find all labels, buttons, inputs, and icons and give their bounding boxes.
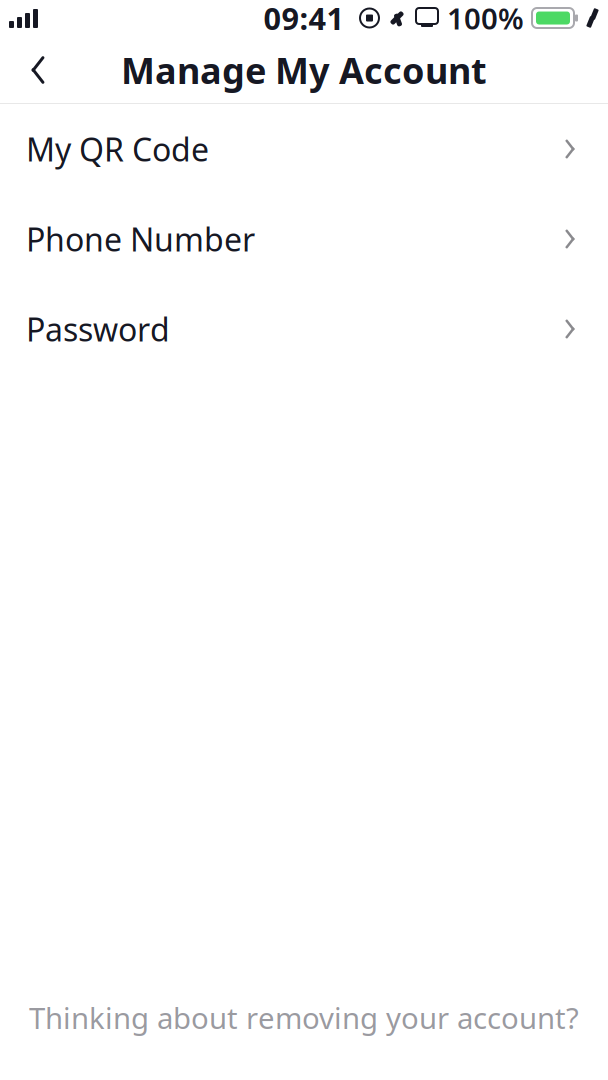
button[interactable]: Back (6, 36, 70, 104)
button[interactable]: My QR Code (0, 104, 608, 194)
staticText: 09:41 (263, 0, 344, 38)
button[interactable]: Password (0, 284, 608, 374)
staticText: Phone Number (26, 218, 255, 260)
button[interactable]: Phone Number (0, 194, 608, 284)
staticText: Manage My Account (121, 46, 487, 94)
staticText: Thinking about removing your account? (29, 998, 579, 1037)
button[interactable]: Thinking about removing your account? (0, 984, 608, 1051)
staticText: 100% (447, 0, 524, 37)
staticText: Password (26, 308, 170, 350)
staticText: My QR Code (26, 128, 209, 170)
